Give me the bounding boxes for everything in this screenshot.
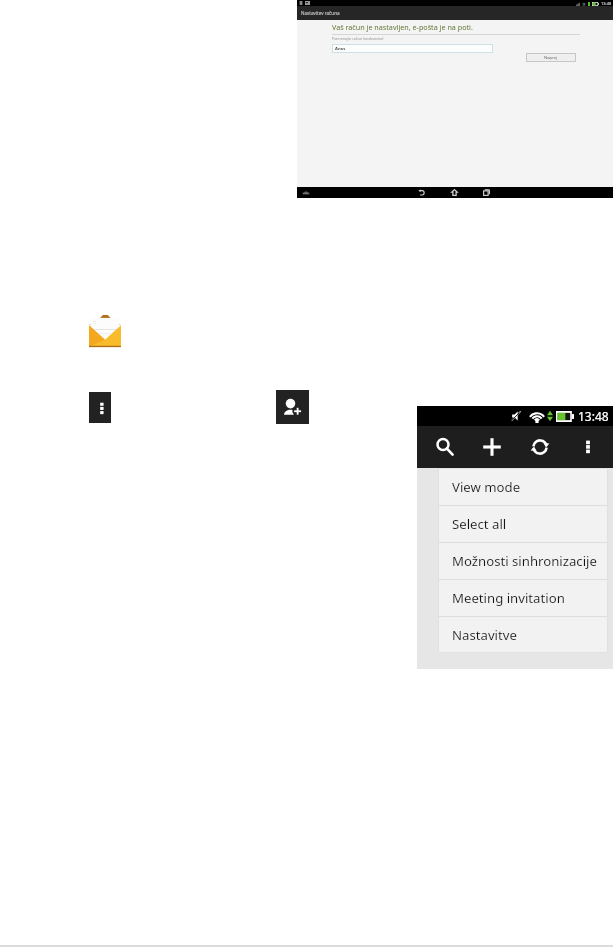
button[interactable]: Select all	[439, 506, 607, 542]
staticText: 13:48	[601, 1, 612, 6]
button[interactable]: Anas	[332, 44, 493, 53]
button[interactable]: Refresh	[523, 430, 557, 464]
staticText: Nastavitve	[452, 626, 517, 644]
staticText: Nastavitev računa	[301, 10, 340, 16]
staticText: Meeting invitation	[452, 589, 565, 607]
staticText: Vaš račun je nastavljen, e-pošta je na p…	[332, 22, 473, 32]
button[interactable]: Meeting invitation	[439, 580, 607, 616]
button[interactable]: Možnosti sinhronizacije	[439, 543, 607, 579]
button[interactable]: View mode	[439, 469, 607, 505]
button[interactable]: Add	[475, 430, 509, 464]
staticText: Naprej	[544, 55, 558, 61]
button[interactable]: Nastavitve	[439, 617, 607, 652]
staticText: View mode	[452, 478, 521, 496]
staticText: Select all	[452, 515, 507, 533]
button[interactable]: Naprej	[526, 53, 576, 62]
staticText: Poimenujte račun (neobvezno)	[332, 36, 384, 41]
button[interactable]: Search	[428, 430, 462, 464]
button[interactable]: Add contact	[276, 390, 309, 424]
staticText: Anas	[335, 46, 346, 52]
button[interactable]: More options	[571, 430, 605, 464]
staticText: Možnosti sinhronizacije	[452, 552, 597, 570]
staticText: 13:48	[578, 408, 609, 424]
button[interactable]: More options	[89, 392, 111, 423]
